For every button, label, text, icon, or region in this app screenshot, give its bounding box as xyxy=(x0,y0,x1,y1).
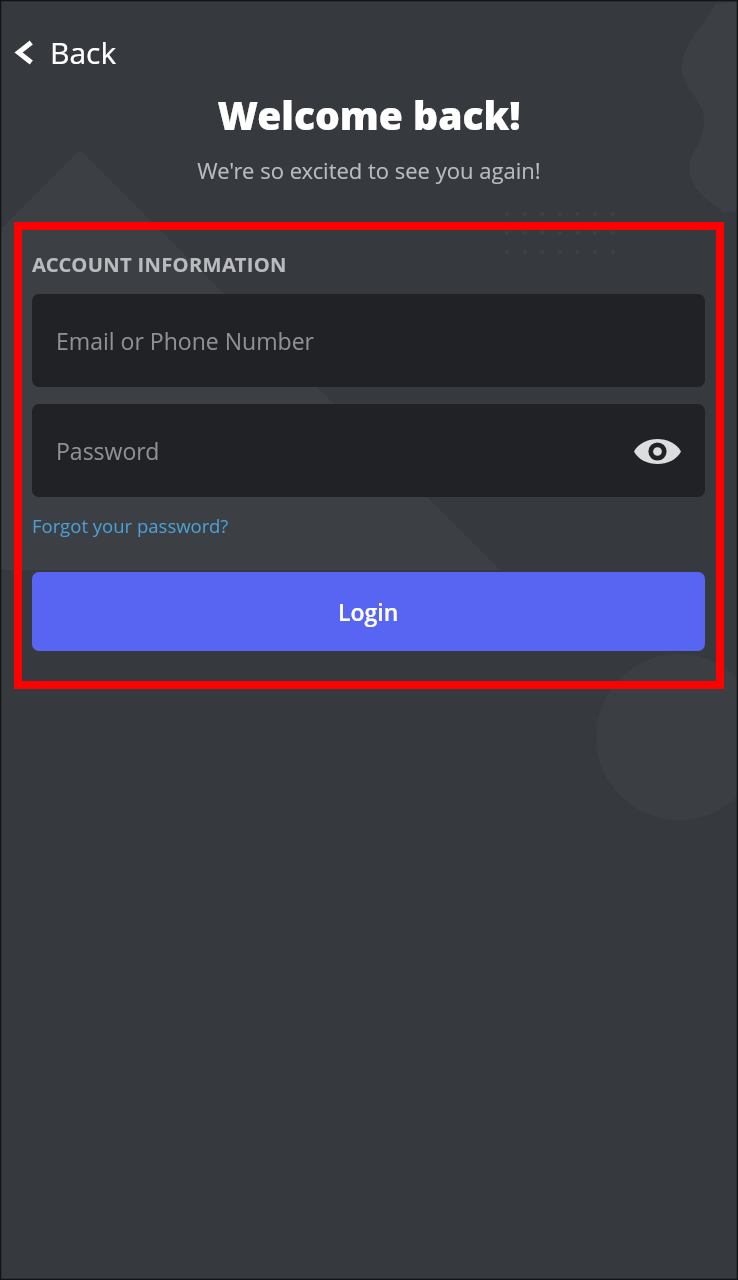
staticText: Welcome back! xyxy=(0,88,738,141)
button[interactable]: Forgot your password? xyxy=(32,513,229,538)
staticText: Login xyxy=(338,596,399,627)
button[interactable]: Password xyxy=(32,404,705,497)
button[interactable]: Show password xyxy=(626,420,688,482)
staticText: Back xyxy=(50,32,117,73)
staticText: We're so excited to see you again! xyxy=(0,155,738,185)
staticText: ACCOUNT INFORMATION xyxy=(32,250,287,278)
button[interactable]: Email or Phone Number xyxy=(32,294,705,387)
staticText: Password xyxy=(56,435,160,466)
staticText: Email or Phone Number xyxy=(56,325,314,356)
button[interactable]: Back xyxy=(8,26,125,79)
button[interactable]: Login xyxy=(32,572,705,651)
